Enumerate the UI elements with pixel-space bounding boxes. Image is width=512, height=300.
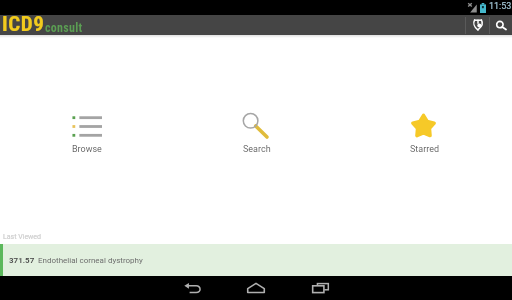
button[interactable]: Recents	[288, 276, 352, 300]
staticText: Last Viewed	[3, 233, 42, 241]
staticText: consult	[45, 21, 83, 35]
staticText: Endothelial corneal dystrophy	[38, 256, 143, 265]
staticText: Starred	[410, 144, 440, 155]
button[interactable]: Home	[224, 276, 288, 300]
button[interactable]: Back	[160, 276, 224, 300]
staticText: Browse	[72, 144, 102, 155]
button[interactable]: 371.57	[0, 244, 512, 276]
staticText: Search	[243, 144, 271, 155]
button[interactable]: Search	[170, 113, 341, 155]
button[interactable]: Search	[490, 15, 512, 35]
staticText: ICD9	[2, 15, 45, 32]
button[interactable]: Starred	[341, 113, 512, 155]
staticText: 11:53	[489, 1, 512, 12]
button[interactable]: Stethoscope	[466, 15, 489, 35]
button[interactable]: Browse	[0, 113, 170, 155]
staticText: 371.57	[9, 256, 35, 265]
